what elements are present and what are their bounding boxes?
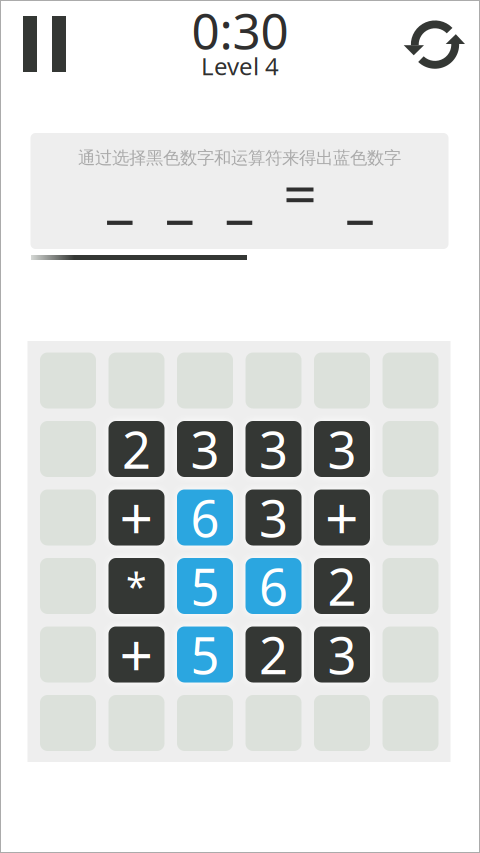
button[interactable]: 3: [177, 421, 233, 477]
button[interactable]: 2: [108, 421, 164, 477]
staticText: 3: [327, 415, 356, 483]
staticText: +: [119, 615, 153, 693]
button[interactable]: 6: [177, 489, 233, 545]
staticText: 通过选择黑色数字和运算符来得出蓝色数字: [78, 147, 401, 169]
staticText: +: [325, 478, 359, 556]
button[interactable]: *: [108, 558, 164, 614]
button[interactable]: 3: [245, 489, 301, 545]
button[interactable]: +: [108, 626, 164, 682]
staticText: 5: [190, 621, 219, 688]
button[interactable]: 3: [245, 421, 301, 477]
button[interactable]: +: [108, 489, 164, 545]
staticText: 5: [190, 552, 219, 620]
button[interactable]: 5: [177, 626, 233, 682]
button[interactable]: 2: [314, 558, 370, 614]
staticText: 3: [259, 484, 288, 551]
button[interactable]: 3: [314, 626, 370, 682]
button[interactable]: Restart: [404, 20, 467, 70]
staticText: 3: [190, 415, 219, 483]
button[interactable]: Pause: [23, 16, 66, 72]
button[interactable]: 3: [314, 421, 370, 477]
button[interactable]: 2: [245, 626, 301, 682]
staticText: 2: [259, 621, 288, 688]
staticText: 2: [122, 415, 151, 483]
staticText: 6: [259, 552, 288, 620]
staticText: 3: [259, 415, 288, 483]
staticText: +: [119, 478, 153, 556]
staticText: 6: [190, 484, 219, 551]
button[interactable]: 5: [177, 558, 233, 614]
staticText: Level 4: [201, 50, 279, 82]
staticText: 3: [327, 621, 356, 688]
staticText: 0:30: [191, 0, 288, 63]
staticText: 2: [327, 552, 356, 620]
staticText: *: [126, 561, 147, 611]
button[interactable]: +: [314, 489, 370, 545]
button[interactable]: 6: [245, 558, 301, 614]
